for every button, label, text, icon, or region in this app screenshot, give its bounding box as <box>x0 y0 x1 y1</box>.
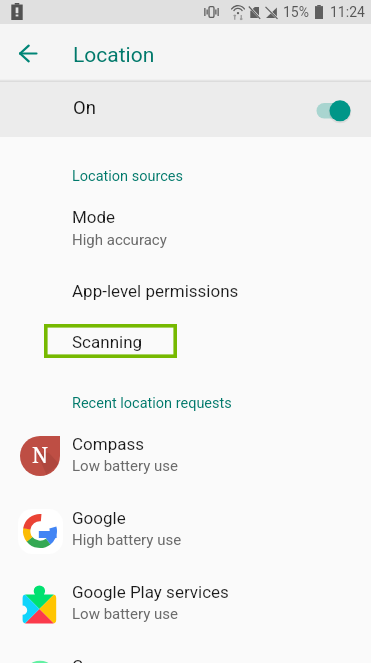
button[interactable]: N <box>0 420 371 494</box>
button[interactable]: Back <box>4 30 51 77</box>
staticText: Camera <box>72 656 131 663</box>
button[interactable]: Camera <box>0 642 371 663</box>
staticText: 11:24 <box>330 4 365 20</box>
staticText: Location sources <box>72 168 183 185</box>
staticText: Recent location requests <box>72 395 232 412</box>
button[interactable]: Google <box>0 494 371 568</box>
staticText: Compass <box>72 434 145 454</box>
button[interactable]: App-level permissions <box>0 271 371 309</box>
staticText: Scanning <box>72 332 143 352</box>
staticText: Low battery use <box>72 457 178 475</box>
staticText: Location <box>73 43 155 68</box>
button[interactable]: On <box>0 82 371 137</box>
staticText: Low battery use <box>72 605 178 623</box>
staticText: High battery use <box>72 531 182 549</box>
staticText: Mode <box>72 207 116 227</box>
staticText: Google <box>72 508 126 528</box>
staticText: High accuracy <box>72 231 167 249</box>
button[interactable]: Google Play services <box>0 568 371 642</box>
staticText: 15% <box>283 4 309 20</box>
staticText: App-level permissions <box>72 281 239 301</box>
staticText: N <box>32 441 49 470</box>
button[interactable]: Scanning <box>44 324 177 358</box>
staticText: Google Play services <box>72 582 229 602</box>
button[interactable]: Mode <box>0 200 371 250</box>
staticText: On <box>73 97 96 119</box>
